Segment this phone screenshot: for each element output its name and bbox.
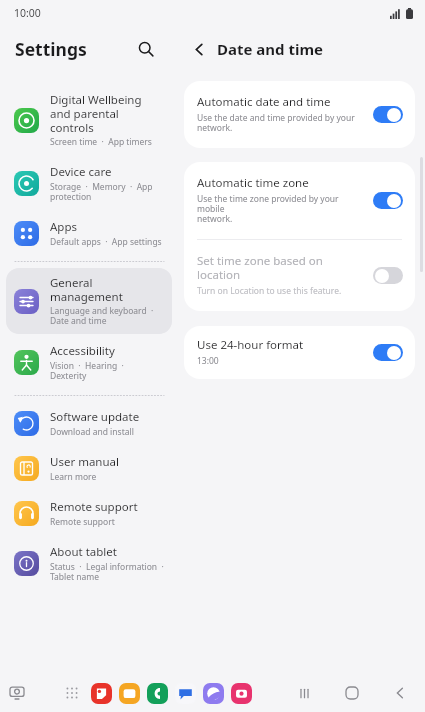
button[interactable]: On (373, 344, 403, 361)
staticText: Digital Wellbeing and parental controls (50, 92, 142, 135)
staticText: Automatic date and time (197, 94, 331, 110)
button[interactable]: Device care (6, 157, 172, 210)
staticText: Storage · Memory · App protection (50, 181, 153, 203)
button[interactable]: Recents (291, 680, 317, 706)
staticText: Automatic time zone (197, 175, 309, 191)
staticText: Use the date and time provided by your n… (197, 112, 355, 134)
staticText: Remote support (50, 516, 115, 528)
staticText: Vision · Hearing · Dexterity (50, 360, 124, 382)
button[interactable]: Remote support (6, 492, 172, 535)
button[interactable]: About tablet (6, 537, 172, 590)
button[interactable]: Back (186, 36, 212, 62)
staticText: Screen time · App timers (50, 136, 152, 148)
button[interactable]: Internet (203, 683, 224, 704)
staticText: Learn more (50, 471, 97, 483)
button[interactable]: Digital Wellbeing and parental controls (6, 85, 172, 155)
staticText: Default apps · App settings (50, 236, 162, 248)
staticText: Date and time (217, 39, 324, 59)
button[interactable]: All apps (60, 681, 84, 705)
staticText: 10:00 (14, 6, 41, 20)
button[interactable]: Accessibility (6, 336, 172, 389)
button[interactable]: Gallery (231, 683, 252, 704)
staticText: Device care (50, 164, 112, 180)
button[interactable]: My Files (119, 683, 140, 704)
button[interactable]: Home (339, 680, 365, 706)
button[interactable]: Samsung Notes (91, 683, 112, 704)
button[interactable]: Phone (147, 683, 168, 704)
staticText: Remote support (50, 499, 138, 515)
staticText: Turn on Location to use this feature. (197, 285, 342, 297)
staticText: Accessibility (50, 343, 115, 359)
staticText: Status · Legal information · Tablet name (50, 561, 164, 583)
staticText: About tablet (50, 544, 117, 560)
button[interactable]: Software update (6, 402, 172, 445)
button[interactable]: Capture (6, 682, 28, 704)
button[interactable]: General management (6, 268, 172, 334)
staticText: Apps (50, 219, 78, 235)
staticText: Use the time zone provided by your mobil… (197, 193, 365, 225)
button[interactable]: Use 24-hour format (184, 326, 415, 379)
button[interactable]: Search (132, 35, 160, 63)
staticText: General management (50, 275, 123, 304)
button[interactable]: Messages (175, 683, 196, 704)
button[interactable]: On (373, 106, 403, 123)
staticText: Software update (50, 409, 140, 425)
button[interactable]: Automatic time zone (184, 162, 415, 239)
button[interactable]: Automatic date and time (184, 81, 415, 148)
staticText: Settings (15, 37, 87, 61)
button[interactable]: On (373, 192, 403, 209)
button[interactable]: Back (387, 680, 413, 706)
button[interactable]: Off (373, 267, 403, 284)
button[interactable]: User manual (6, 447, 172, 490)
staticText: Language and keyboard · Date and time (50, 305, 154, 327)
button[interactable]: Set time zone based on location (184, 240, 415, 311)
button[interactable]: Apps (6, 212, 172, 255)
staticText: Download and install (50, 426, 134, 438)
staticText: User manual (50, 454, 119, 470)
staticText: 13:00 (197, 355, 219, 367)
staticText: Set time zone based on location (197, 253, 323, 283)
staticText: Use 24-hour format (197, 337, 304, 353)
